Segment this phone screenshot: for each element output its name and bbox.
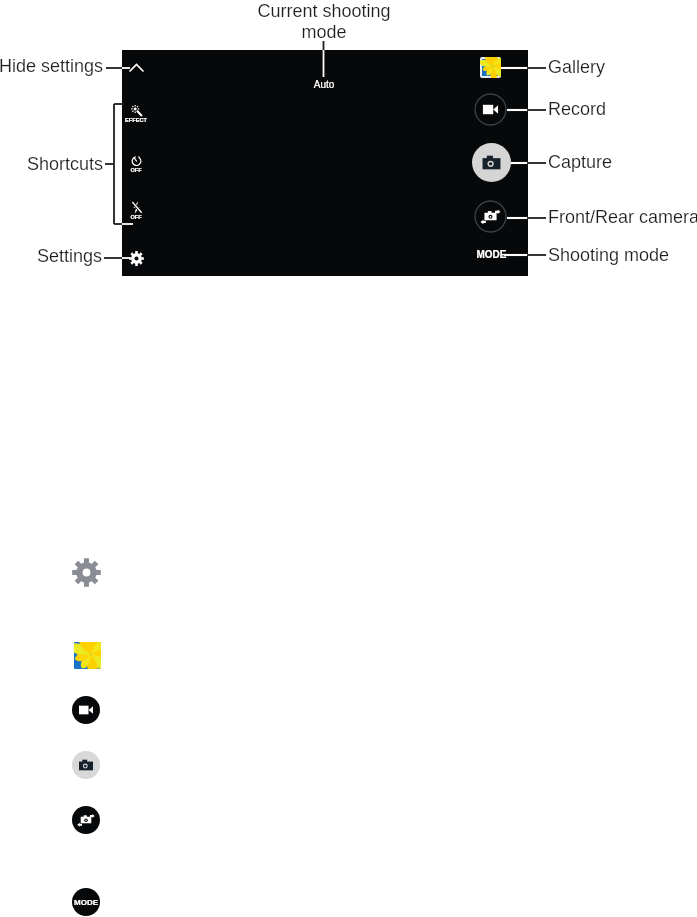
staticText: OFF	[120, 214, 152, 236]
button[interactable]: Capture	[472, 143, 511, 182]
button[interactable]: EFFECT	[120, 104, 152, 126]
button[interactable]: OFF	[120, 154, 152, 176]
button[interactable]: Gallery	[482, 59, 499, 76]
staticText: Front/Rear camera	[548, 207, 697, 227]
button[interactable]: Hide settings	[126, 58, 147, 79]
button[interactable]: Front/Rear camera	[474, 200, 507, 233]
staticText: Gallery	[548, 57, 606, 77]
button[interactable]: MODE	[474, 249, 509, 917]
staticText: Current shooting mode	[241, 1, 407, 917]
staticText: EFFECT	[120, 117, 152, 139]
staticText: Record	[548, 99, 607, 119]
button[interactable]: OFF	[120, 201, 152, 223]
button[interactable]: Auto	[302, 79, 346, 917]
staticText: Auto	[302, 79, 346, 917]
staticText: MODE	[74, 898, 98, 907]
staticText: Capture	[548, 152, 613, 172]
staticText: MODE	[474, 249, 509, 917]
staticText: Shooting mode	[548, 245, 670, 265]
staticText: Shortcuts	[0, 154, 103, 917]
staticText: Hide settings	[0, 56, 103, 917]
button[interactable]: Record	[474, 93, 507, 126]
staticText: Settings	[0, 246, 102, 917]
staticText: OFF	[120, 167, 152, 189]
button[interactable]: Settings	[129, 251, 144, 266]
